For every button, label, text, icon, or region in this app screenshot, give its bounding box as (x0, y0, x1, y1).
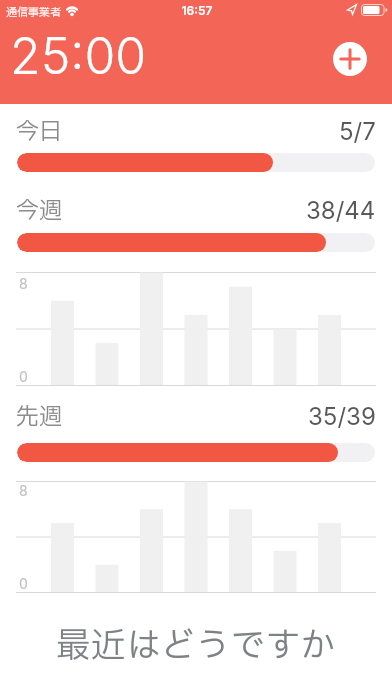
staticText: 8 (19, 275, 28, 292)
staticText: 0 (19, 575, 28, 592)
staticText: 35/39 (308, 402, 376, 431)
staticText: 0 (19, 368, 28, 385)
staticText: 今日 (16, 115, 62, 149)
staticText: 通信事業者 (6, 4, 61, 21)
button[interactable]: 最近はどうですか (0, 621, 392, 672)
staticText: 先週 (16, 400, 62, 434)
staticText: 今週 (16, 194, 62, 228)
staticText: 16:57 (181, 3, 213, 18)
staticText: 25:00 (10, 26, 147, 86)
staticText: 8 (19, 482, 28, 499)
staticText: 最近はどうですか (56, 621, 336, 672)
staticText: 5/7 (339, 117, 376, 146)
staticText: 38/44 (306, 196, 376, 225)
button[interactable] (333, 42, 367, 76)
